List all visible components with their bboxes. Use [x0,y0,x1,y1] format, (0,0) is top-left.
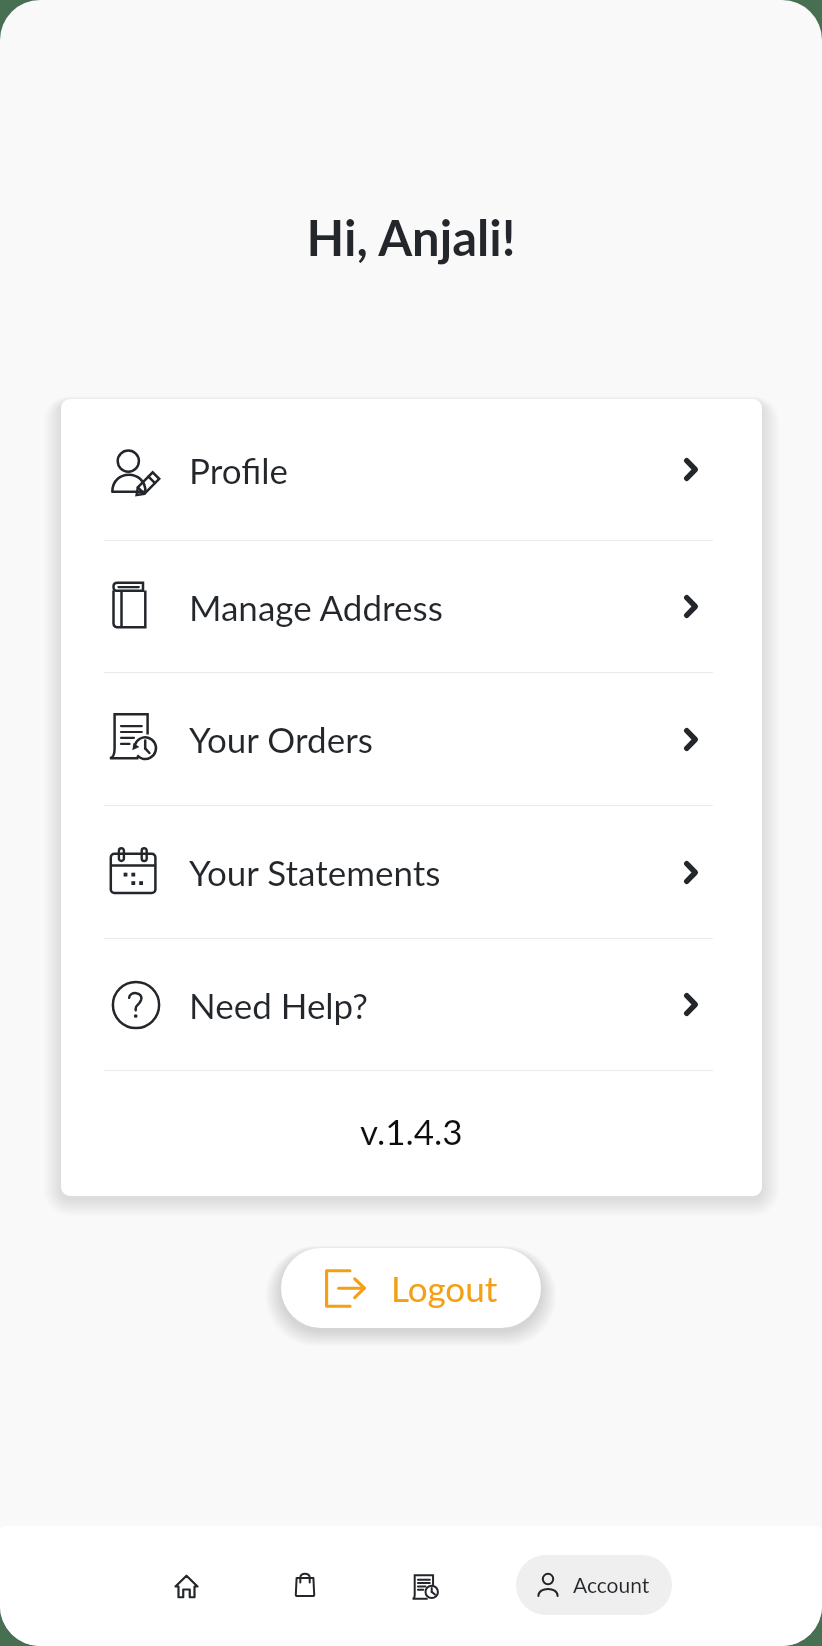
button[interactable]: Profile [61,399,762,540]
staticText: Your Statements [189,851,441,893]
button[interactable]: Logout [281,1248,541,1328]
button[interactable]: Your Statements [61,806,762,938]
button[interactable]: Need Help? [61,939,762,1070]
button[interactable]: Orders [389,1557,461,1615]
staticText: Profile [189,449,288,491]
staticText: v.1.4.3 [360,1110,463,1152]
staticText: Account [573,1572,650,1597]
staticText: Manage Address [189,586,443,628]
staticText: Logout [391,1267,498,1309]
button[interactable]: Account [516,1555,672,1615]
staticText: Need Help? [189,984,368,1026]
button[interactable]: Your Orders [61,673,762,805]
button[interactable]: Shop [269,1557,341,1615]
button[interactable]: Home [150,1557,222,1615]
button[interactable]: Manage Address [61,541,762,672]
staticText: Your Orders [189,718,373,760]
staticText: Hi, Anjali! [0,208,822,267]
